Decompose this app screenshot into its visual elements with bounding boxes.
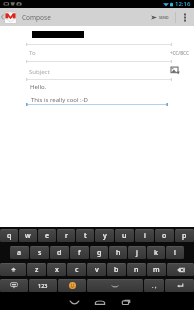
staticText: c <box>75 265 79 275</box>
button[interactable]: e <box>38 229 56 242</box>
button[interactable]: x <box>47 263 66 276</box>
button[interactable]: i <box>135 229 154 242</box>
staticText: s <box>38 248 42 258</box>
button[interactable]: g <box>90 246 108 259</box>
staticText: x <box>55 265 59 275</box>
button[interactable]: . , <box>144 279 164 292</box>
button[interactable]: h <box>109 246 127 259</box>
button[interactable]: u <box>115 229 134 242</box>
staticText: a <box>17 248 22 258</box>
staticText: f <box>78 248 81 258</box>
button[interactable]: p <box>175 229 194 242</box>
staticText: SEND <box>159 15 169 20</box>
button[interactable]: More options <box>176 8 194 26</box>
staticText: z <box>35 265 39 275</box>
button[interactable]: w <box>19 229 37 242</box>
button[interactable]: 123 <box>29 279 57 292</box>
staticText: w <box>25 231 31 241</box>
button[interactable]: v <box>87 263 106 276</box>
staticText: k <box>154 248 158 258</box>
button[interactable]: Navigate up <box>0 8 18 26</box>
staticText: v <box>95 265 99 275</box>
staticText: Compose <box>22 13 51 22</box>
button[interactable]: f <box>70 246 89 259</box>
staticText: q <box>7 231 12 241</box>
staticText: 12:16 <box>175 0 191 8</box>
button[interactable]: a <box>10 246 29 259</box>
button[interactable]: q <box>0 229 18 242</box>
staticText: To <box>29 49 36 57</box>
button[interactable]: l <box>166 246 184 259</box>
button[interactable]: Recent apps <box>116 294 136 310</box>
button[interactable]: Shift <box>0 263 26 276</box>
button[interactable]: Keyboard settings <box>0 279 28 292</box>
button[interactable]: c <box>67 263 86 276</box>
staticText: m <box>153 265 160 275</box>
button[interactable]: Space <box>87 279 143 292</box>
button[interactable]: +CC/BCC <box>170 50 189 56</box>
staticText: i <box>144 231 146 241</box>
staticText: r <box>65 231 68 241</box>
button[interactable]: b <box>107 263 126 276</box>
button[interactable]: r <box>57 229 75 242</box>
staticText: +CC/BCC <box>170 50 189 56</box>
staticText: t <box>84 231 87 241</box>
button[interactable]: Enter <box>165 279 194 292</box>
button[interactable]: t <box>76 229 94 242</box>
staticText: h <box>116 248 121 258</box>
staticText: d <box>57 248 62 258</box>
button[interactable]: SEND <box>147 8 175 26</box>
staticText: l <box>174 248 176 258</box>
button[interactable]: o <box>155 229 174 242</box>
button[interactable]: d <box>50 246 69 259</box>
staticText: j <box>136 248 138 258</box>
staticText: g <box>97 248 102 258</box>
button[interactable]: s <box>30 246 49 259</box>
staticText: u <box>122 231 127 241</box>
staticText: y <box>103 231 107 241</box>
staticText: . , <box>152 282 157 289</box>
button[interactable]: Attach picture <box>168 63 182 77</box>
button[interactable]: Hide keyboard <box>64 294 84 310</box>
staticText: 123 <box>38 282 48 289</box>
button[interactable]: y <box>95 229 114 242</box>
staticText: Subject <box>29 68 50 76</box>
staticText: b <box>114 265 119 275</box>
button[interactable]: Home <box>90 294 110 310</box>
staticText: This is really cool :-D <box>31 96 89 104</box>
button[interactable]: z <box>27 263 46 276</box>
staticText: e <box>45 231 50 241</box>
button[interactable]: k <box>147 246 165 259</box>
button[interactable]: m <box>147 263 166 276</box>
button[interactable]: Backspace <box>167 263 194 276</box>
button[interactable]: n <box>127 263 146 276</box>
staticText: n <box>134 265 139 275</box>
staticText: p <box>182 231 187 241</box>
staticText: Hello. <box>30 83 47 91</box>
staticText: o <box>162 231 167 241</box>
button[interactable]: Emoji <box>58 279 86 292</box>
button[interactable]: j <box>128 246 146 259</box>
